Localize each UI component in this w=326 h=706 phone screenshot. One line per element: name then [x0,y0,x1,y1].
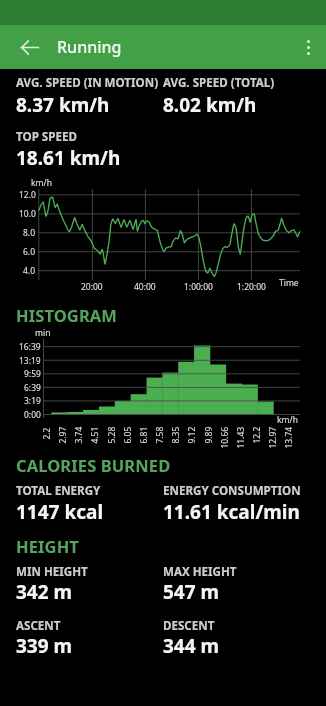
staticText: Running [57,36,122,58]
staticText: TOTAL ENERGY [16,483,101,499]
staticText: km/h [277,414,298,426]
staticText: DESCENT [163,618,215,634]
staticText: 4.0 [23,265,36,277]
staticText: HEIGHT [16,535,79,557]
staticText: ENERGY CONSUMPTION [163,483,301,499]
staticText: 342 m [16,579,73,605]
staticText: 8.37 km/h [16,92,110,118]
staticText: ASCENT [16,618,61,634]
staticText: min [35,327,51,339]
staticText: 20:00 [81,281,103,293]
staticText: 547 m [163,579,220,605]
staticText: TOP SPEED [16,129,77,145]
staticText: 1:00:00 [184,281,213,293]
staticText: Time [279,277,299,289]
staticText: 1147 kcal [16,499,104,525]
staticText: 13:19 [19,355,41,367]
staticText: AVG. SPEED (IN MOTION) [16,75,159,91]
staticText: 40:00 [134,281,156,293]
staticText: 6.0 [23,246,36,258]
staticText: 344 m [163,633,220,659]
staticText: MIN HEIGHT [16,564,88,580]
staticText: km/h [31,177,52,189]
staticText: MAX HEIGHT [163,564,237,580]
button[interactable]: More options [286,25,326,69]
staticText: 16:39 [19,341,41,353]
staticText: 6:39 [24,382,41,394]
button[interactable]: Back [7,25,51,69]
staticText: 0:00 [24,409,41,421]
staticText: 8.02 km/h [163,92,257,118]
staticText: 8.0 [23,227,36,239]
staticText: 339 m [16,633,73,659]
staticText: 18.61 km/h [16,145,121,171]
staticText: 3:19 [24,395,41,407]
staticText: 10.0 [19,208,36,220]
staticText: HISTOGRAM [16,304,118,326]
staticText: 9:59 [24,368,41,380]
staticText: 12.0 [19,189,36,201]
staticText: AVG. SPEED (TOTAL) [163,75,275,91]
staticText: 11.61 kcal/min [163,499,300,525]
staticText: 1:20:00 [237,281,266,293]
staticText: CALORIES BURNED [16,454,171,476]
